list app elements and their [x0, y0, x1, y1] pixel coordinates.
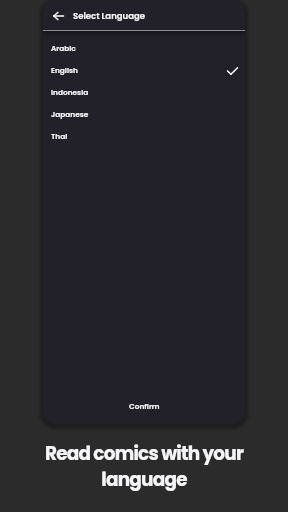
staticText: English	[51, 65, 78, 75]
button[interactable]: Confirm	[43, 388, 245, 424]
staticText: Indonesia	[51, 87, 89, 97]
staticText: Japanese	[51, 109, 89, 119]
staticText: Thai	[51, 131, 68, 141]
button[interactable]: Thai	[43, 125, 245, 147]
staticText: Arabic	[51, 43, 76, 53]
staticText: Select Language	[73, 10, 145, 22]
button[interactable]: Arabic	[43, 37, 245, 59]
button[interactable]: Japanese	[43, 103, 245, 125]
button[interactable]: Back	[46, 5, 70, 27]
button[interactable]: English	[43, 59, 245, 81]
staticText: Read comics with your language	[38, 441, 250, 493]
button[interactable]: Indonesia	[43, 81, 245, 103]
staticText: Confirm	[129, 401, 160, 411]
